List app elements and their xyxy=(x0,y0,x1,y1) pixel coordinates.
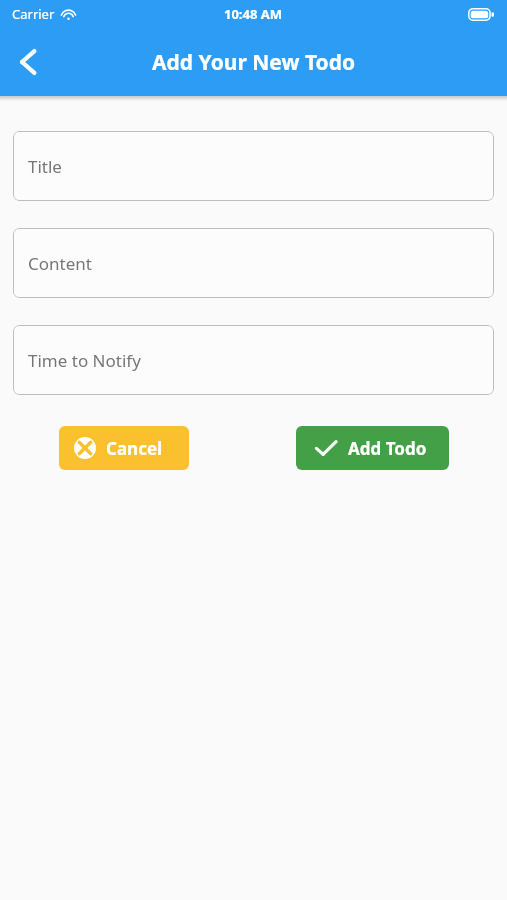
staticText: Add Todo xyxy=(348,437,427,460)
staticText: Carrier xyxy=(12,5,55,23)
button[interactable]: Content xyxy=(13,228,494,298)
button[interactable]: Title xyxy=(13,131,494,201)
staticText: Content xyxy=(28,252,92,275)
staticText: Time to Notify xyxy=(28,349,141,372)
staticText: Add Your New Todo xyxy=(152,48,356,77)
staticText: Cancel xyxy=(106,437,163,460)
staticText: Title xyxy=(28,155,62,178)
button[interactable]: Cancel xyxy=(59,426,189,470)
button[interactable]: Add Todo xyxy=(296,426,449,470)
button[interactable]: Back xyxy=(0,34,56,90)
other: Battery xyxy=(468,8,494,21)
staticText: 10:48 AM xyxy=(224,5,283,23)
button[interactable]: Time to Notify xyxy=(13,325,494,395)
